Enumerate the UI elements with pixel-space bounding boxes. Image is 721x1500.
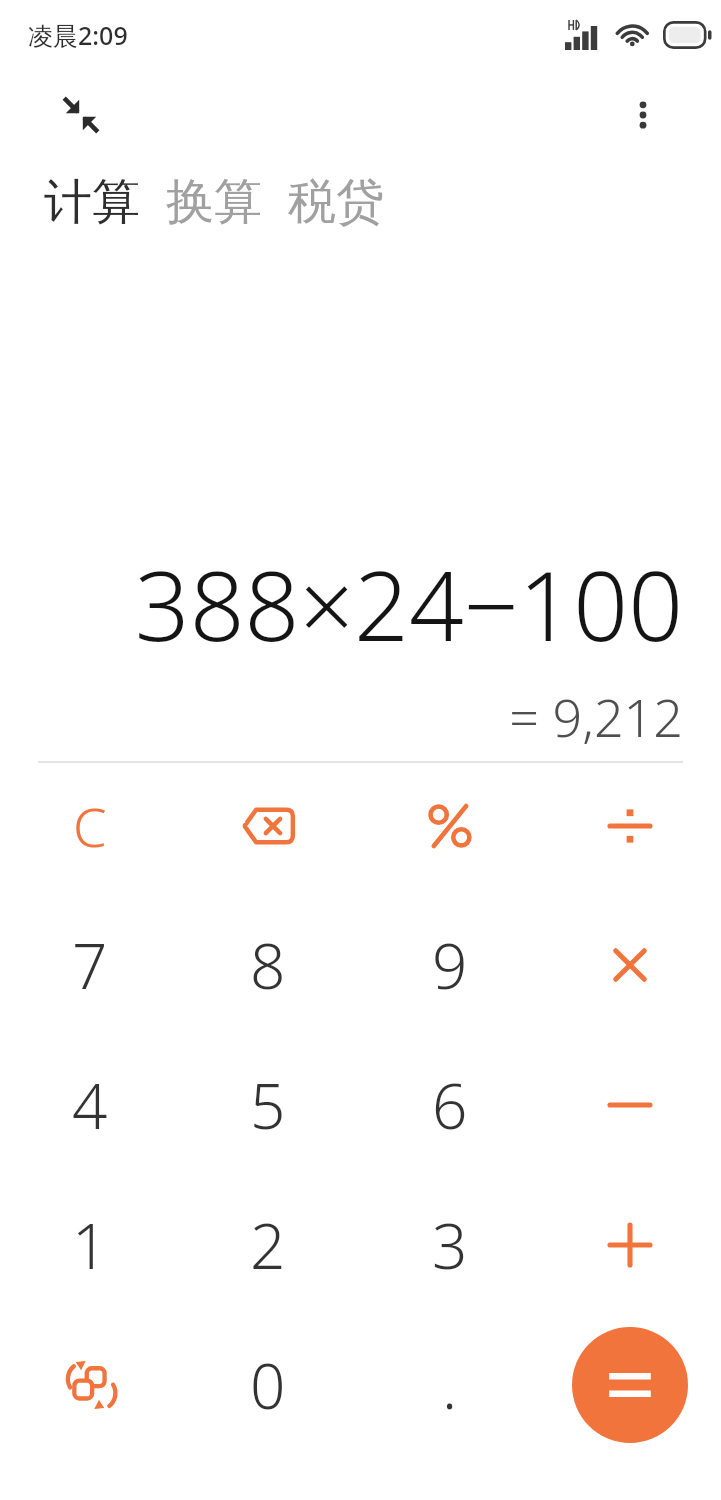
staticText: 计算 [44,172,140,232]
staticText: 388×24−100 [38,538,683,669]
button[interactable]: Equals [572,1327,688,1443]
staticText: 换算 [166,172,262,232]
button[interactable]: 2 [180,1178,356,1312]
button[interactable]: 7 [2,898,178,1032]
button[interactable]: Collapse [50,84,112,146]
button[interactable]: 税贷 [288,172,384,232]
staticText: 9 [432,923,468,1007]
staticText: 2 [250,1203,286,1287]
button[interactable]: 4 [2,1038,178,1172]
button[interactable]: 9 [362,898,538,1032]
button[interactable]: 5 [180,1038,356,1172]
staticText: 5 [250,1063,286,1147]
button[interactable]: 换算 [166,172,262,232]
button[interactable]: . [362,1318,538,1452]
button[interactable]: 计算 [44,172,140,232]
staticText: 凌晨2:09 [28,18,128,52]
button[interactable]: 8 [180,898,356,1032]
staticText: . [442,1343,458,1427]
button[interactable]: C [2,759,178,893]
button[interactable]: 0 [180,1318,356,1452]
button[interactable]: More options [612,84,674,146]
staticText: 6 [432,1063,468,1147]
button[interactable]: 6 [362,1038,538,1172]
staticText: 1 [72,1203,108,1287]
button[interactable]: Divide [542,759,718,893]
staticText: 0 [250,1343,286,1427]
staticText: 税贷 [288,172,384,232]
button[interactable]: Percent [362,759,538,893]
staticText: C [73,789,107,863]
staticText: 8 [250,923,286,1007]
staticText: 4 [72,1063,108,1147]
button[interactable]: 3 [362,1178,538,1312]
staticText: 7 [72,923,108,1007]
button[interactable]: 1 [2,1178,178,1312]
button[interactable]: Plus [542,1178,718,1312]
staticText: 3 [432,1203,468,1287]
button[interactable]: Multiply [542,898,718,1032]
button[interactable]: Unit conversion [2,1318,178,1452]
staticText: = 9,212 [38,681,683,752]
button[interactable]: Backspace [180,759,356,893]
button[interactable]: Minus [542,1038,718,1172]
